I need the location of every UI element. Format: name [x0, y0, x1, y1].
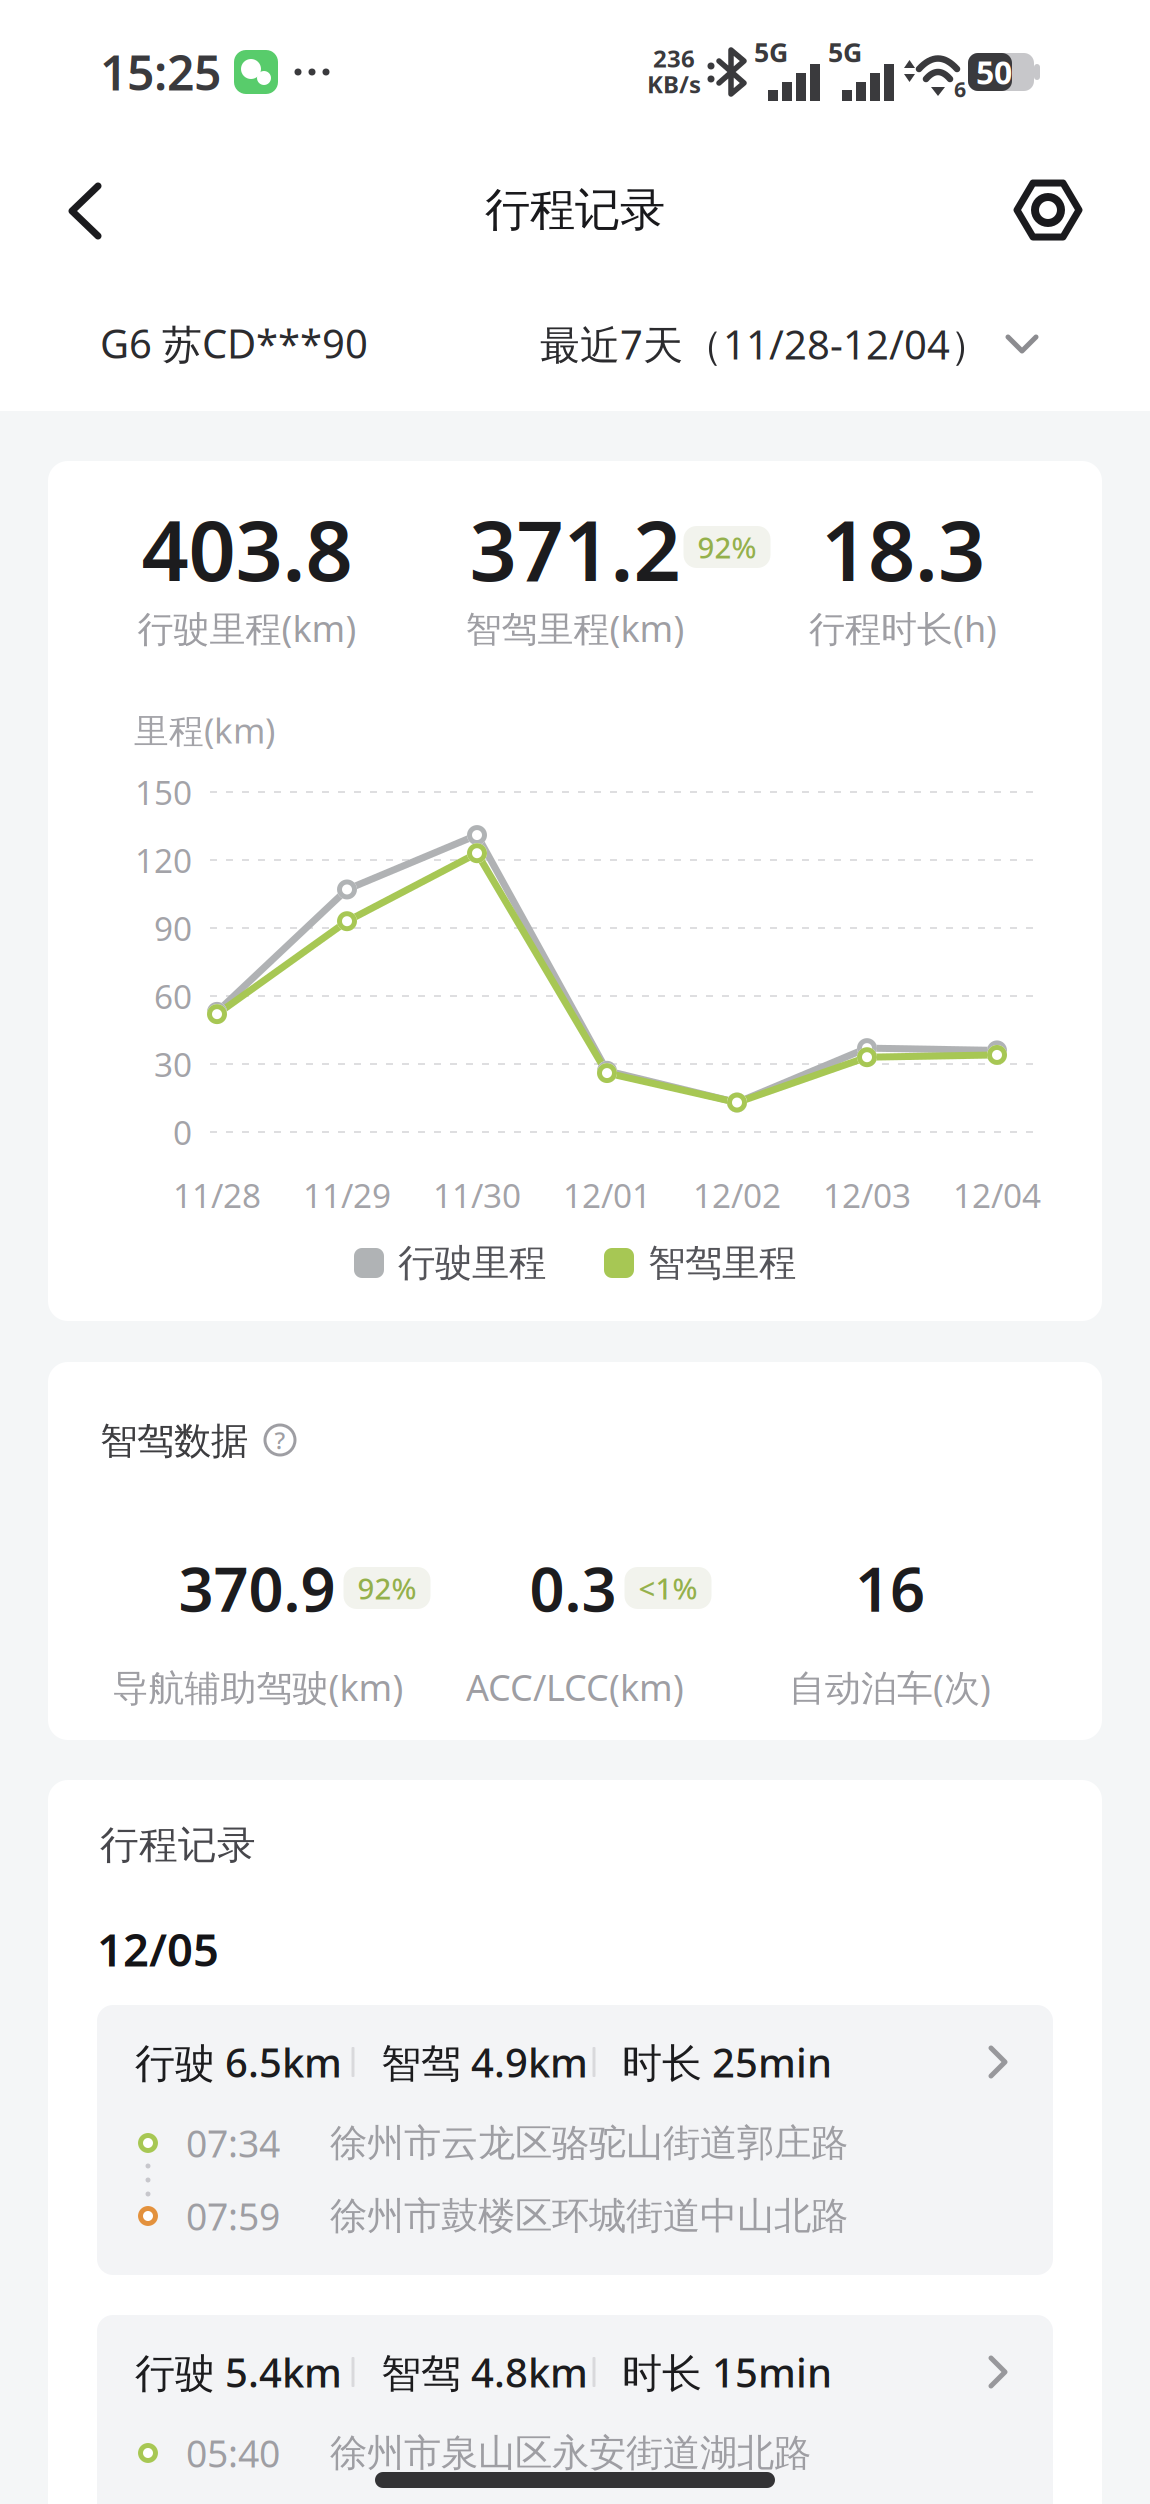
staticText: 15:25: [100, 40, 221, 104]
staticText: 11/29: [303, 1173, 391, 1217]
staticText: 12/03: [823, 1173, 911, 1217]
staticText: 徐州市泉山区永安街道湖北路: [330, 2430, 811, 2476]
staticText: 6: [954, 75, 966, 103]
staticText: 12/02: [693, 1173, 781, 1217]
staticText: 30: [154, 1042, 192, 1086]
staticText: 智驾里程: [648, 1240, 796, 1286]
staticText: KB/s: [647, 68, 701, 100]
staticText: 90: [154, 906, 192, 950]
staticText: 0.3: [529, 1547, 616, 1629]
staticText: 最近7天（11/28-12/04）: [540, 317, 990, 370]
staticText: 徐州市鼓楼区环城街道中山北路: [330, 2193, 848, 2239]
staticText: 370.9: [178, 1547, 335, 1629]
staticText: 12/05: [97, 1919, 219, 1979]
button[interactable]: Back: [56, 175, 128, 247]
staticText: 0: [173, 1110, 192, 1154]
staticText: 5G: [754, 34, 788, 70]
staticText: 时长 25min: [622, 2035, 832, 2088]
staticText: 236: [653, 42, 695, 74]
staticText: 18.3: [821, 494, 985, 604]
staticText: 时长 15min: [622, 2345, 832, 2398]
staticText: 行驶 6.5km: [135, 2035, 342, 2088]
staticText: 92%: [697, 527, 756, 566]
staticText: 行驶 5.4km: [135, 2345, 342, 2398]
staticText: 智驾 4.9km: [381, 2035, 588, 2088]
staticText: G6 苏CD***90: [100, 316, 368, 370]
button[interactable]: Settings: [1012, 174, 1084, 246]
staticText: 120: [135, 838, 192, 882]
staticText: 智驾数据: [100, 1418, 248, 1464]
staticText: 92%: [357, 1568, 416, 1607]
staticText: 行程记录: [100, 1821, 256, 1869]
staticText: 07:34: [186, 2118, 280, 2168]
staticText: 导航辅助驾驶(km): [112, 1663, 403, 1711]
staticText: 行驶里程: [398, 1240, 546, 1286]
staticText: 60: [154, 974, 192, 1018]
staticText: 07:59: [186, 2191, 280, 2241]
staticText: 行驶里程(km): [137, 604, 356, 652]
staticText: 05:40: [186, 2428, 280, 2478]
staticText: 5G: [828, 34, 862, 70]
staticText: 自动泊车(次): [789, 1663, 991, 1711]
staticText: 50: [976, 51, 1012, 93]
staticText: 371.2: [469, 494, 680, 604]
staticText: 403.8: [141, 494, 352, 604]
staticText: 12/01: [563, 1173, 651, 1217]
staticText: 12/04: [953, 1173, 1041, 1217]
button[interactable]: 行驶 5.4km: [97, 2315, 1053, 2504]
staticText: 徐州市云龙区骆驼山街道郭庄路: [330, 2120, 848, 2166]
staticText: 行程记录: [485, 182, 665, 238]
staticText: ACC/LCC(km): [466, 1663, 684, 1711]
staticText: ?: [274, 1424, 285, 1456]
staticText: 11/30: [433, 1173, 521, 1217]
button[interactable]: 行驶 6.5km: [97, 2005, 1053, 2275]
staticText: 智驾里程(km): [465, 604, 684, 652]
button[interactable]: Help: [265, 1425, 295, 1455]
button[interactable]: Vehicle: [100, 316, 460, 370]
staticText: 行程时长(h): [809, 604, 997, 652]
button[interactable]: Date range: [540, 317, 1040, 370]
staticText: 16: [855, 1547, 925, 1629]
staticText: <1%: [638, 1568, 697, 1607]
staticText: 里程(km): [134, 707, 275, 753]
staticText: 11/28: [173, 1173, 261, 1217]
staticText: 150: [135, 770, 192, 814]
staticText: 智驾 4.8km: [381, 2345, 588, 2398]
